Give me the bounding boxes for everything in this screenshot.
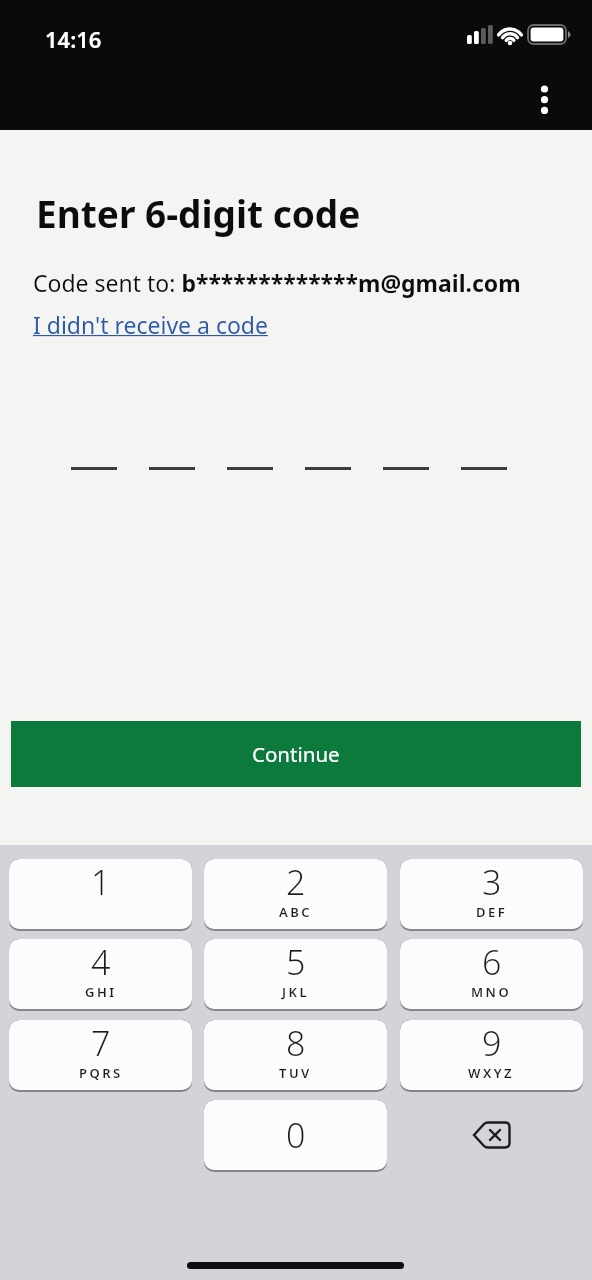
staticText: Continue bbox=[252, 740, 340, 768]
button[interactable]: 2 bbox=[204, 859, 387, 931]
staticText: WXYZ bbox=[468, 1064, 515, 1082]
staticText: PQRS bbox=[79, 1064, 123, 1082]
button[interactable]: Continue bbox=[11, 721, 581, 787]
button[interactable]: 5 bbox=[204, 939, 387, 1011]
staticText: 14:16 bbox=[45, 24, 102, 54]
staticText: I didn't receive a code bbox=[33, 309, 268, 340]
button[interactable]: 6 bbox=[400, 939, 583, 1011]
button[interactable] bbox=[400, 1100, 583, 1170]
staticText: 2 bbox=[286, 859, 306, 903]
button[interactable]: 3 bbox=[400, 859, 583, 931]
button[interactable]: 8 bbox=[204, 1020, 387, 1092]
staticText: ABC bbox=[279, 903, 313, 921]
staticText: 4 bbox=[91, 939, 111, 983]
button[interactable]: 7 bbox=[9, 1020, 192, 1092]
staticText: GHI bbox=[85, 983, 117, 1001]
staticText: 7 bbox=[91, 1020, 111, 1064]
button[interactable] bbox=[526, 78, 564, 122]
staticText: 3 bbox=[482, 859, 502, 903]
staticText: 8 bbox=[286, 1020, 306, 1064]
staticText: 5 bbox=[286, 939, 306, 983]
staticText: Code sent to: b*************m@gmail.com bbox=[33, 267, 521, 298]
button[interactable]: 4 bbox=[9, 939, 192, 1011]
staticText: MNO bbox=[471, 983, 512, 1001]
staticText: 6 bbox=[482, 939, 502, 983]
button[interactable]: I didn't receive a code bbox=[30, 306, 265, 337]
staticText: TUV bbox=[279, 1064, 312, 1082]
button[interactable]: 1 bbox=[9, 859, 192, 931]
staticText: 1 bbox=[91, 859, 111, 903]
staticText: 0 bbox=[286, 1112, 306, 1158]
staticText: JKL bbox=[282, 983, 310, 1001]
staticText: 9 bbox=[482, 1020, 502, 1064]
button[interactable]: 9 bbox=[400, 1020, 583, 1092]
staticText: DEF bbox=[476, 903, 508, 921]
staticText: Enter 6-digit code bbox=[36, 188, 361, 238]
button[interactable]: 0 bbox=[204, 1100, 387, 1172]
